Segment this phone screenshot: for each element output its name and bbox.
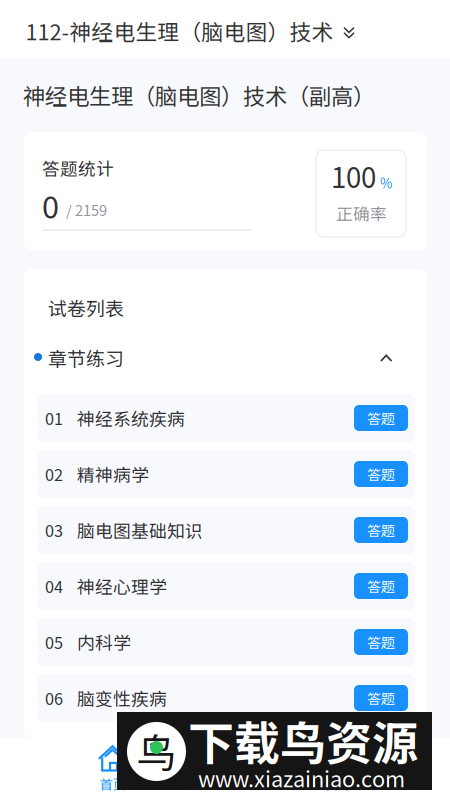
staticText: 神经电生理（脑电图）技术（副高）	[23, 79, 375, 111]
staticText: 正确率	[336, 201, 387, 225]
staticText: 0	[42, 183, 59, 227]
staticText: 答题	[367, 688, 395, 708]
staticText: 答题	[367, 632, 395, 652]
staticText: 下载鸟资源	[188, 707, 418, 774]
staticText: 答题	[367, 576, 395, 596]
button[interactable]: 02	[37, 450, 415, 498]
staticText: 02	[45, 462, 63, 486]
button[interactable]: 首页	[0, 738, 225, 800]
staticText: %	[380, 173, 392, 192]
staticText: 神经系统疾病	[77, 405, 185, 431]
button[interactable]: 03	[37, 506, 415, 554]
staticText: 答题	[367, 408, 395, 428]
button[interactable]: 04	[37, 562, 415, 610]
button[interactable]: 我的	[225, 738, 450, 800]
staticText: 脑电图基础知识	[77, 517, 203, 543]
button[interactable]: 章节练习	[24, 341, 427, 369]
staticText: www.xiazainiao.com	[198, 762, 405, 793]
staticText: / 2159	[66, 199, 107, 220]
staticText: 鸟	[136, 721, 176, 779]
staticText: 试卷列表	[48, 294, 124, 321]
staticText: 神经心理学	[77, 573, 167, 599]
staticText: 05	[45, 630, 63, 654]
staticText: 精神病学	[77, 461, 149, 487]
button[interactable]: 06	[37, 674, 415, 722]
staticText: 112-神经电生理（脑电图）技术	[25, 15, 333, 46]
button[interactable]: 112-神经电生理（脑电图）技术	[0, 0, 450, 58]
staticText: 100	[331, 156, 376, 196]
staticText: 首页	[99, 774, 125, 793]
staticText: 答题统计	[42, 155, 114, 180]
staticText: 章节练习	[48, 344, 124, 371]
staticText: 06	[45, 686, 63, 710]
staticText: 我的	[324, 774, 350, 793]
staticText: 答题	[367, 464, 395, 484]
staticText: 03	[45, 518, 63, 542]
staticText: 04	[45, 574, 63, 598]
staticText: 答题	[367, 520, 395, 540]
staticText: 内科学	[77, 629, 131, 655]
button[interactable]: 05	[37, 618, 415, 666]
button[interactable]: 01	[37, 394, 415, 442]
staticText: 脑变性疾病	[77, 685, 167, 711]
staticText: 01	[45, 406, 63, 430]
